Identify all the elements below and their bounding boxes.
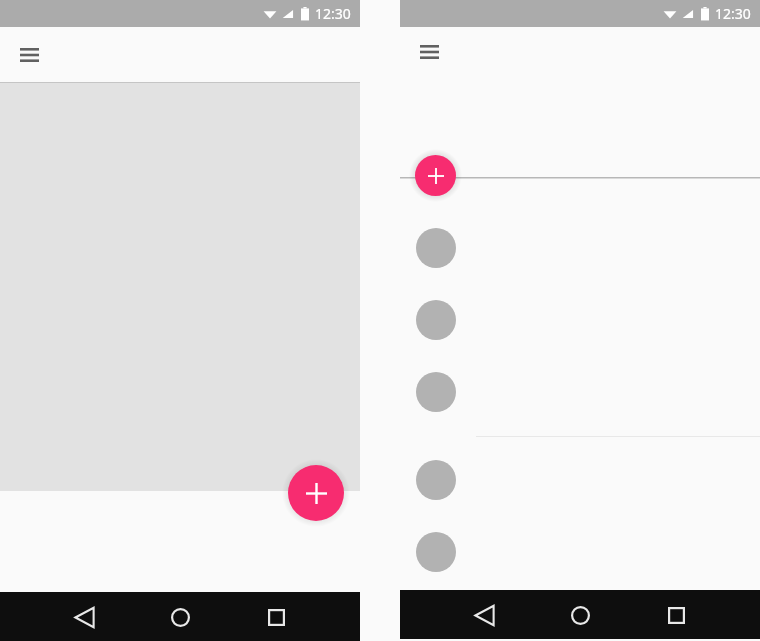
button[interactable]: Add (415, 155, 456, 196)
button[interactable]: Recent apps (652, 591, 700, 639)
button[interactable] (400, 526, 760, 578)
button[interactable] (400, 294, 760, 346)
button[interactable]: Open navigation drawer (409, 32, 449, 72)
button[interactable] (400, 222, 760, 274)
button[interactable]: Open navigation drawer (9, 35, 49, 75)
button[interactable]: Back (60, 593, 108, 641)
button[interactable]: Home (556, 591, 604, 639)
button[interactable] (400, 454, 760, 506)
staticText: 12:30 (315, 4, 351, 23)
button[interactable]: Home (156, 593, 204, 641)
button[interactable]: Back (460, 591, 508, 639)
button[interactable]: Recent apps (252, 593, 300, 641)
button[interactable] (400, 366, 760, 418)
button[interactable]: Add (288, 465, 344, 521)
staticText: 12:30 (715, 4, 751, 23)
